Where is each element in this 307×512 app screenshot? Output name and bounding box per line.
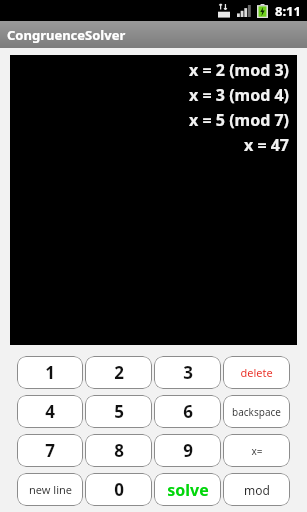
button[interactable]: 7	[17, 434, 83, 467]
button[interactable]: 1	[17, 356, 83, 389]
staticText: x = 47	[243, 134, 289, 156]
staticText: 0	[114, 478, 124, 501]
button[interactable]: new line	[17, 473, 83, 506]
button[interactable]: 9	[154, 434, 221, 467]
staticText: 6	[183, 400, 193, 423]
staticText: x=	[251, 444, 263, 458]
staticText: 7	[45, 439, 55, 462]
button[interactable]: solve	[154, 473, 221, 506]
staticText: 5	[114, 400, 124, 423]
button[interactable]: 5	[85, 395, 152, 428]
staticText: solve	[167, 479, 209, 501]
staticText: 1	[45, 361, 55, 384]
staticText: 2	[114, 361, 124, 384]
button[interactable]: x=	[223, 434, 290, 467]
button[interactable]: mod	[223, 473, 290, 506]
button[interactable]: x = 2 (mod 3)	[10, 55, 297, 345]
staticText: 4	[45, 400, 55, 423]
button[interactable]: 2	[85, 356, 152, 389]
staticText: 8	[114, 439, 124, 462]
staticText: 8:11	[275, 2, 301, 20]
button[interactable]: 3	[154, 356, 221, 389]
button[interactable]: 4	[17, 395, 83, 428]
staticText: CongruenceSolver	[7, 26, 126, 44]
button[interactable]: 0	[85, 473, 152, 506]
staticText: 9	[183, 439, 193, 462]
staticText: mod	[244, 482, 270, 498]
staticText: delete	[240, 365, 273, 380]
staticText: new line	[29, 482, 72, 497]
staticText: x = 5 (mod 7)	[189, 109, 289, 131]
button[interactable]: delete	[223, 356, 290, 389]
staticText: backspace	[232, 405, 281, 419]
staticText: 3	[183, 361, 193, 384]
button[interactable]: 8	[85, 434, 152, 467]
button[interactable]: backspace	[223, 395, 290, 428]
button[interactable]: 6	[154, 395, 221, 428]
staticText: x = 3 (mod 4)	[189, 84, 289, 106]
staticText: x = 2 (mod 3)	[189, 59, 289, 81]
